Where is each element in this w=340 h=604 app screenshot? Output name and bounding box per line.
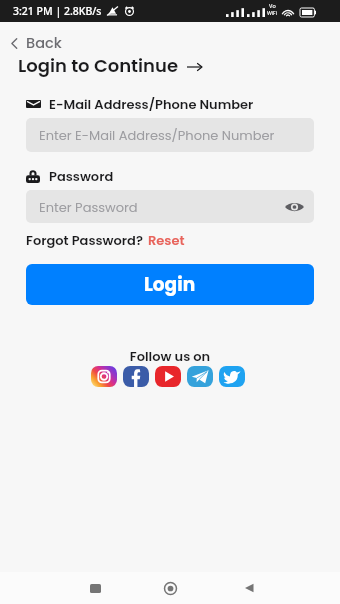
staticText: Follow us on [0, 347, 340, 365]
button[interactable]: Recent apps [80, 573, 110, 603]
button[interactable]: Back [234, 573, 264, 603]
staticText: Enter Password [39, 198, 138, 216]
staticText: 3:21 PM | 2.8KB/s [13, 4, 102, 18]
staticText: Forgot Password? [26, 231, 143, 249]
staticText: Login to Continue [18, 53, 178, 78]
button[interactable]: Telegram [187, 365, 213, 387]
staticText: Login [144, 272, 196, 298]
button[interactable]: Enter Password [26, 190, 314, 223]
button[interactable]: Enter E-Mail Address/Phone Number [26, 118, 314, 152]
staticText: WiFi [267, 10, 277, 17]
button[interactable]: Show password [280, 193, 308, 221]
staticText: Back [26, 33, 62, 53]
button[interactable]: Facebook [123, 365, 149, 387]
staticText: Enter E-Mail Address/Phone Number [39, 126, 275, 144]
button[interactable]: YouTube [155, 365, 181, 387]
staticText: Vo [269, 3, 276, 10]
staticText: Password [49, 167, 114, 185]
button[interactable]: Back [0, 31, 76, 55]
button[interactable]: Login [26, 264, 314, 305]
button[interactable]: Twitter [219, 365, 245, 387]
button[interactable]: Reset [148, 231, 185, 249]
staticText: E-Mail Address/Phone Number [49, 95, 254, 113]
button[interactable]: Instagram [91, 365, 117, 387]
button[interactable]: Home [155, 573, 185, 603]
